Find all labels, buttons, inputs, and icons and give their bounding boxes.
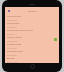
staticText: Account name: [7, 15, 22, 18]
staticText: light theme: [7, 40, 18, 43]
staticText: user profile: [7, 19, 18, 22]
staticText: manage: [7, 33, 15, 36]
staticText: Privacy and security center: [7, 29, 34, 32]
staticText: all enabled: [7, 26, 17, 29]
staticText: Connected apps: [7, 50, 23, 53]
staticText: Display options: [7, 36, 23, 39]
staticText: three apps: [7, 54, 17, 57]
staticText: Settings: [28, 10, 37, 13]
staticText: Backup: [7, 57, 15, 60]
staticText: 12 GB free: [7, 47, 17, 50]
staticText: Notifications: [7, 22, 20, 25]
staticText: daily at 2am: [7, 61, 18, 63]
staticText: Storage usage: [7, 43, 22, 46]
